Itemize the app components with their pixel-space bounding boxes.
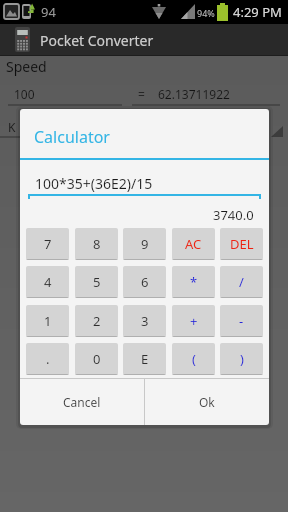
button[interactable]: . — [26, 343, 69, 375]
staticText: 0 — [93, 350, 101, 368]
staticText: Ok — [199, 394, 215, 410]
staticText: 4:29 PM — [233, 3, 282, 21]
button[interactable]: 9 — [123, 228, 166, 260]
staticText: = — [138, 86, 145, 102]
staticText: 3 — [141, 312, 149, 330]
staticText: + — [190, 312, 198, 330]
button[interactable]: - — [220, 305, 263, 337]
staticText: DEL — [230, 235, 254, 253]
button[interactable]: * — [172, 266, 215, 298]
staticText: 94% — [197, 7, 215, 19]
staticText: E — [141, 350, 149, 368]
staticText: K — [8, 119, 16, 135]
staticText: / — [239, 273, 244, 291]
staticText: 9 — [141, 235, 149, 253]
staticText: Cancel — [63, 394, 101, 410]
staticText: 7 — [44, 235, 52, 253]
staticText: ( — [192, 350, 196, 368]
staticText: * — [190, 273, 198, 291]
button[interactable]: 0 — [75, 343, 118, 375]
staticText: 5 — [93, 273, 101, 291]
staticText: 1 — [44, 312, 52, 330]
staticText: 4 — [44, 273, 52, 291]
button[interactable]: Cancel — [20, 379, 144, 425]
staticText: 6 — [141, 273, 149, 291]
button[interactable]: 5 — [75, 266, 118, 298]
button[interactable]: + — [172, 305, 215, 337]
staticText: ) — [240, 350, 244, 368]
button[interactable]: 6 — [123, 266, 166, 298]
button[interactable]: E — [123, 343, 166, 375]
button[interactable]: AC — [172, 228, 215, 260]
staticText: 3740.0 — [213, 206, 254, 224]
button[interactable]: 4 — [26, 266, 69, 298]
staticText: Calculator — [34, 126, 110, 148]
button[interactable]: ( — [172, 343, 215, 375]
staticText: 94 — [41, 3, 56, 21]
staticText: AC — [185, 235, 202, 253]
button[interactable]: ) — [220, 343, 263, 375]
button[interactable]: DEL — [220, 228, 263, 260]
button[interactable]: 3 — [123, 305, 166, 337]
staticText: 62.13711922 — [158, 86, 230, 102]
button[interactable]: 2 — [75, 305, 118, 337]
staticText: . — [46, 350, 50, 368]
staticText: Pocket Converter — [40, 31, 154, 50]
button[interactable]: 8 — [75, 228, 118, 260]
staticText: 100 — [14, 86, 35, 102]
button[interactable]: Ok — [145, 379, 269, 425]
button[interactable]: / — [220, 266, 263, 298]
button[interactable]: 1 — [26, 305, 69, 337]
staticText: - — [239, 312, 244, 330]
staticText: 2 — [93, 312, 101, 330]
staticText: 8 — [93, 235, 101, 253]
staticText: 100*35+(36E2)/15 — [35, 174, 153, 193]
button[interactable]: 7 — [26, 228, 69, 260]
staticText: Speed — [6, 57, 47, 76]
